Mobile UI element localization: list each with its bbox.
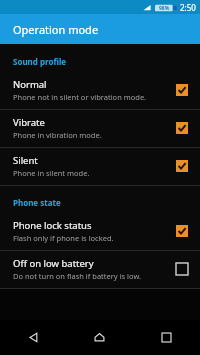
button[interactable]: Silent	[0, 148, 200, 185]
staticText: 2:50	[180, 2, 196, 13]
staticText: Phone in silent mode.	[13, 168, 90, 178]
staticText: Phone state	[13, 197, 61, 208]
staticText: Silent	[13, 154, 38, 167]
button[interactable]: Back	[0, 320, 66, 355]
button[interactable]: Home	[66, 320, 133, 355]
staticText: Phone lock status	[13, 219, 92, 232]
button[interactable]: Phone lock status	[0, 213, 200, 250]
button[interactable]: Off on low battery	[0, 251, 200, 288]
button[interactable]: Checked	[175, 159, 189, 173]
button[interactable]: Checked	[175, 224, 189, 238]
staticText: Flash only if phone is locked.	[13, 233, 114, 243]
button[interactable]: Checked	[175, 83, 189, 97]
button[interactable]: Normal	[0, 72, 200, 109]
staticText: Normal	[13, 78, 47, 91]
staticText: Operation mode	[13, 22, 99, 37]
staticText: Vibrate	[13, 116, 45, 129]
staticText: Phone in vibration mode.	[13, 130, 102, 140]
button[interactable]: Unchecked	[175, 262, 189, 276]
button[interactable]: Recent apps	[133, 320, 200, 355]
staticText: Phone not in silent or vibration mode.	[13, 92, 147, 102]
staticText: Off on low battery	[13, 257, 94, 270]
staticText: Sound profile	[13, 56, 67, 67]
staticText: Do not turn on flash if battery is low.	[13, 271, 142, 281]
button[interactable]: Vibrate	[0, 110, 200, 147]
staticText: 98%	[159, 5, 170, 12]
button[interactable]: Checked	[175, 121, 189, 135]
